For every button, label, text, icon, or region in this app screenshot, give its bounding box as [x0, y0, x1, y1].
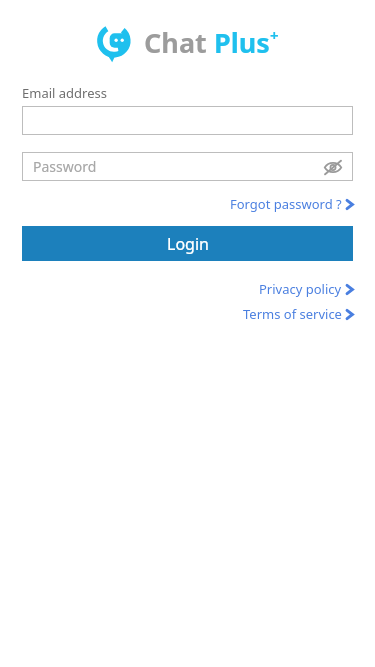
button[interactable]: Show password	[321, 155, 345, 179]
staticText: Password	[33, 157, 97, 176]
button[interactable]: Privacy policy	[259, 278, 353, 300]
staticText: Forgot password ?	[230, 195, 342, 213]
button[interactable]: Password	[22, 152, 353, 181]
button[interactable]: Forgot password ?	[230, 193, 353, 215]
button[interactable]: Terms of service	[243, 303, 353, 325]
staticText: Privacy policy	[259, 280, 342, 298]
staticText: Chat	[144, 24, 214, 61]
staticText: Plus	[214, 24, 270, 61]
staticText: Login	[167, 233, 209, 255]
button[interactable]: Login	[22, 226, 353, 261]
staticText: +	[270, 25, 279, 45]
button[interactable]	[22, 106, 353, 135]
staticText: Email address	[22, 84, 107, 102]
staticText: Terms of service	[243, 305, 342, 323]
